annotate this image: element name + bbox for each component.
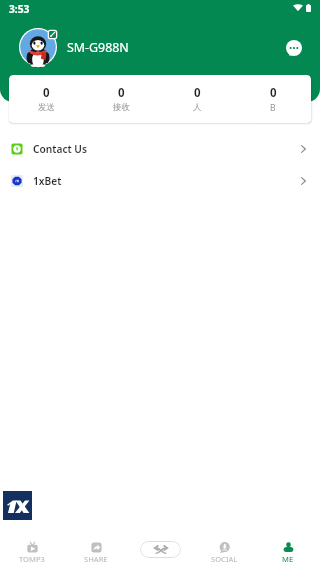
staticText: 0 (43, 85, 50, 101)
button[interactable]: 0 (84, 75, 159, 123)
button[interactable]: 1xBet (0, 165, 320, 197)
button[interactable]: 0 (9, 75, 84, 123)
button[interactable]: 0 (235, 75, 311, 123)
staticText: 0 (118, 85, 125, 101)
staticText: SM-G988N (67, 39, 129, 56)
button[interactable]: ME (256, 542, 320, 568)
button[interactable]: 1xBet banner (3, 491, 32, 520)
staticText: 人 (193, 102, 202, 113)
staticText: SOCIAL (211, 554, 238, 564)
staticText: ME (282, 554, 294, 564)
button[interactable]: TOMP3 (0, 542, 64, 568)
staticText: Contact Us (33, 142, 87, 156)
button[interactable]: Shuffle (140, 541, 181, 558)
staticText: SHARE (84, 554, 108, 564)
staticText: 3:53 (9, 2, 30, 16)
staticText: 接收 (113, 102, 130, 113)
staticText: 发送 (38, 102, 55, 113)
staticText: 1xBet (33, 174, 62, 188)
button[interactable]: Profile picture (19, 28, 57, 66)
staticText: TOMP3 (19, 554, 45, 564)
button[interactable]: 0 (159, 75, 235, 123)
button[interactable]: Contact Us (0, 133, 320, 165)
button[interactable]: SOCIAL (192, 542, 256, 568)
button[interactable]: SHARE (64, 542, 128, 568)
staticText: B (270, 102, 276, 114)
button[interactable]: More options (283, 37, 304, 58)
staticText: 0 (194, 85, 201, 101)
staticText: 0 (270, 85, 277, 101)
